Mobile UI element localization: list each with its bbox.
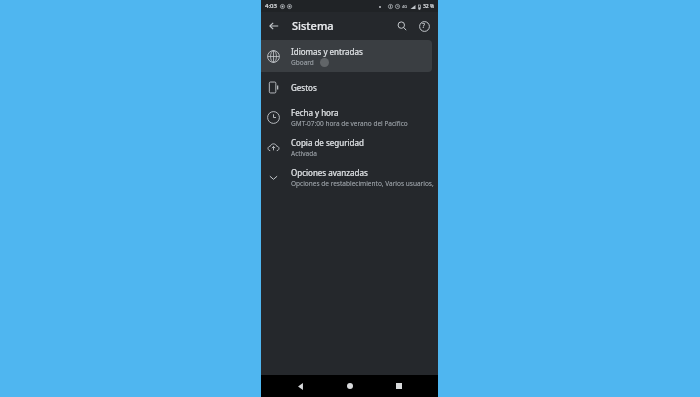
button[interactable]: Back: [265, 17, 283, 35]
staticText: ?: [422, 21, 426, 31]
button[interactable]: Recents: [389, 376, 409, 396]
button[interactable]: Search: [392, 16, 412, 36]
staticText: Copia de seguridad: [291, 137, 364, 148]
staticText: 4G: [402, 4, 408, 9]
button[interactable]: Copia de seguridad: [261, 132, 438, 162]
staticText: Gboard: [291, 58, 314, 67]
button[interactable]: Idiomas y entradas: [261, 40, 432, 72]
staticText: Opciones de restablecimiento, Varios usu…: [291, 179, 438, 188]
staticText: Gestos: [291, 82, 317, 93]
button[interactable]: Back: [290, 376, 310, 396]
button[interactable]: Help: [414, 16, 434, 36]
staticText: 4:03: [265, 2, 277, 10]
staticText: 32 %: [423, 3, 435, 10]
button[interactable]: Gestos: [261, 72, 438, 102]
button[interactable]: Opciones avanzadas: [261, 162, 438, 192]
staticText: Opciones avanzadas: [291, 167, 368, 178]
staticText: GMT-07:00 hora de verano del Pacífico: [291, 119, 408, 128]
staticText: Sistema: [292, 18, 334, 33]
button[interactable]: Home: [340, 376, 360, 396]
button[interactable]: Fecha y hora: [261, 102, 438, 132]
staticText: Fecha y hora: [291, 107, 339, 118]
staticText: Idiomas y entradas: [291, 46, 363, 57]
staticText: Activada: [291, 149, 317, 158]
